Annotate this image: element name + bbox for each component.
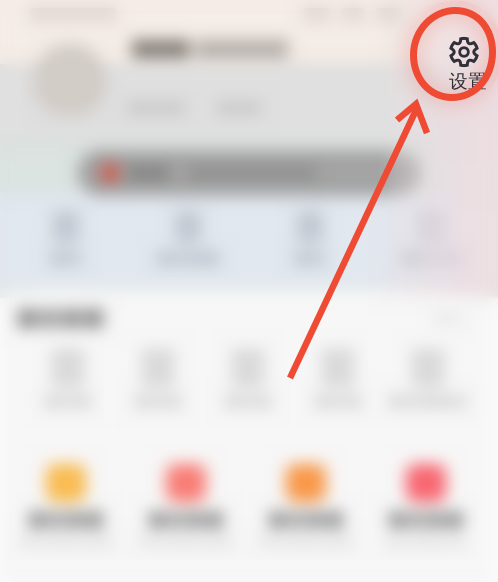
button[interactable]: Service bbox=[203, 349, 293, 421]
staticText: 设置 bbox=[449, 70, 487, 93]
button[interactable]: Service bbox=[293, 349, 383, 421]
button[interactable]: Service bbox=[366, 464, 486, 568]
button[interactable]: Quick action bbox=[5, 211, 127, 285]
button[interactable]: 设置 Settings bbox=[0, 0, 498, 582]
button[interactable]: Service bbox=[113, 349, 203, 421]
button[interactable]: Service bbox=[126, 464, 246, 568]
button[interactable]: Quick action bbox=[127, 211, 249, 285]
button[interactable]: Service bbox=[23, 349, 113, 421]
button[interactable]: Service bbox=[383, 349, 473, 421]
button[interactable]: Quick action bbox=[249, 211, 371, 285]
button[interactable]: Quick action bbox=[371, 211, 493, 285]
button[interactable]: Service bbox=[6, 464, 126, 568]
button[interactable]: Service bbox=[246, 464, 366, 568]
